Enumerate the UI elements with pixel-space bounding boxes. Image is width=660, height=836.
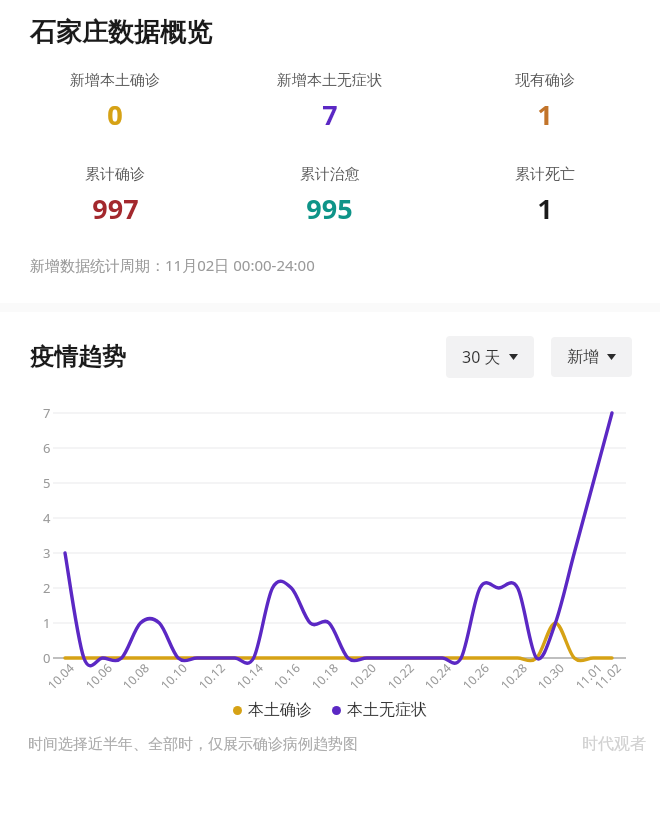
button[interactable]: 新增本土确诊 <box>8 71 222 133</box>
button[interactable]: 累计确诊 <box>8 165 222 227</box>
staticText: 10.22 <box>384 659 417 693</box>
button[interactable]: 新增 <box>551 337 632 377</box>
staticText: 5 <box>43 474 51 492</box>
staticText: 6 <box>43 439 51 457</box>
staticText: 2 <box>43 579 51 597</box>
staticText: 997 <box>92 190 139 227</box>
staticText: 10.20 <box>346 659 379 693</box>
staticText: 10.04 <box>44 659 77 693</box>
staticText: 时代观者 <box>582 734 646 754</box>
staticText: 7 <box>322 96 338 133</box>
button[interactable]: 本土无症状 <box>332 700 427 720</box>
staticText: 累计死亡 <box>515 165 575 184</box>
button[interactable]: 新增本土无症状 <box>222 71 437 133</box>
staticText: 10.24 <box>421 659 454 693</box>
staticText: 新增 <box>567 347 599 367</box>
staticText: 0 <box>107 96 123 133</box>
staticText: 本土确诊 <box>248 700 312 720</box>
staticText: 10.18 <box>308 659 341 693</box>
staticText: 本土无症状 <box>347 700 427 720</box>
button[interactable]: 30 天 <box>446 336 534 378</box>
button[interactable]: 现有确诊 <box>437 71 652 133</box>
staticText: 1 <box>537 96 553 133</box>
staticText: 10.16 <box>270 659 303 693</box>
staticText: 7 <box>43 404 51 422</box>
button[interactable]: 累计死亡 <box>437 165 652 227</box>
staticText: 10.30 <box>534 659 567 693</box>
button[interactable]: 本土确诊 <box>233 700 312 720</box>
staticText: 30 天 <box>462 346 501 368</box>
staticText: 累计确诊 <box>85 165 145 184</box>
staticText: 累计治愈 <box>300 165 360 184</box>
staticText: 时间选择近半年、全部时，仅展示确诊病例趋势图 <box>28 735 358 754</box>
staticText: 3 <box>43 544 51 562</box>
staticText: 新增本土确诊 <box>70 71 160 90</box>
staticText: 10.06 <box>82 659 115 693</box>
staticText: 10.14 <box>233 659 266 693</box>
staticText: 0 <box>43 649 51 667</box>
staticText: 新增本土无症状 <box>277 71 382 90</box>
staticText: 10.10 <box>157 659 190 693</box>
staticText: 10.26 <box>459 659 492 693</box>
staticText: 疫情趋势 <box>30 342 126 372</box>
staticText: 1 <box>43 614 51 632</box>
staticText: 10.12 <box>195 659 228 693</box>
staticText: 石家庄数据概览 <box>30 16 212 49</box>
staticText: 4 <box>43 509 51 527</box>
staticText: 1 <box>537 190 553 227</box>
staticText: 10.08 <box>119 659 152 693</box>
staticText: 现有确诊 <box>515 71 575 90</box>
staticText: 11.02 <box>591 659 624 693</box>
staticText: 995 <box>306 190 353 227</box>
staticText: 新增数据统计周期：11月02日 00:00-24:00 <box>30 255 315 275</box>
staticText: 10.28 <box>497 659 530 693</box>
button[interactable]: 累计治愈 <box>222 165 437 227</box>
staticText: 11.01 <box>572 659 605 693</box>
